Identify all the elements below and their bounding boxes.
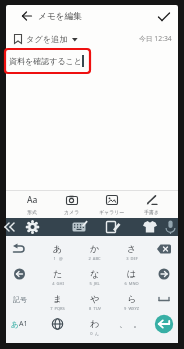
staticText: 今日 12:34 — [139, 34, 172, 43]
button[interactable] — [71, 218, 88, 236]
button[interactable]: 記号 — [4, 286, 35, 312]
button[interactable]: 、 — [113, 311, 150, 337]
button[interactable]: た — [39, 261, 76, 287]
staticText: 5 JKL — [89, 281, 100, 286]
staticText: 手書き — [144, 209, 160, 215]
button[interactable]: タグを追加 — [12, 31, 86, 46]
staticText: 0 ん — [90, 331, 99, 336]
staticText: Aa — [27, 194, 38, 206]
staticText: 9 WXYZ — [124, 306, 139, 311]
staticText: わ — [90, 318, 100, 329]
button[interactable]: ギャラリー — [94, 190, 130, 218]
staticText: ら — [127, 293, 137, 304]
button[interactable] — [24, 218, 41, 236]
staticText: 、 — [119, 319, 128, 330]
button[interactable] — [18, 7, 36, 25]
staticText: か — [90, 243, 100, 254]
staticText: さ — [127, 243, 137, 254]
staticText: カメラ — [64, 209, 80, 215]
button[interactable]: は — [113, 261, 150, 287]
button[interactable]: ま — [39, 286, 76, 312]
button[interactable] — [150, 286, 178, 312]
button[interactable] — [141, 218, 159, 236]
staticText: A1 — [19, 319, 28, 329]
button[interactable]: わ — [76, 311, 113, 337]
staticText: ギャラリー — [99, 209, 125, 215]
staticText: 2 ABC — [88, 256, 101, 261]
button[interactable] — [150, 236, 178, 262]
staticText: タグを追加 — [26, 34, 68, 44]
button[interactable]: あ — [39, 236, 76, 262]
staticText: 記号 — [13, 295, 27, 304]
button[interactable]: カメラ — [54, 190, 90, 218]
staticText: 形式 — [27, 209, 37, 215]
button[interactable] — [150, 311, 178, 337]
staticText: 8 TUV — [89, 306, 101, 311]
staticText: 資料を確認すること — [9, 56, 82, 66]
button[interactable]: か — [76, 236, 113, 262]
button[interactable] — [39, 311, 76, 337]
staticText: あ — [53, 243, 63, 254]
staticText: 1 @ — [53, 256, 63, 261]
button[interactable] — [163, 218, 178, 236]
staticText: 7 PQRS — [50, 306, 65, 311]
staticText: 6 MNO — [124, 281, 139, 286]
button[interactable]: さ — [113, 236, 150, 262]
button[interactable]: あ — [4, 311, 35, 337]
button[interactable] — [105, 218, 122, 236]
button[interactable] — [150, 261, 178, 287]
button[interactable]: Aa — [14, 190, 50, 218]
button[interactable]: な — [76, 261, 113, 287]
button[interactable] — [4, 261, 35, 287]
staticText: あ — [11, 320, 19, 329]
staticText: は — [127, 268, 137, 279]
button[interactable] — [4, 236, 35, 262]
staticText: た — [53, 268, 63, 279]
staticText: ま — [53, 293, 63, 304]
staticText: 4 GHI — [52, 281, 64, 286]
staticText: 3 DEF — [126, 256, 138, 261]
button[interactable] — [155, 8, 173, 25]
button[interactable]: 手書き — [134, 190, 170, 218]
staticText: 。 — [133, 319, 142, 330]
button[interactable]: や — [76, 286, 113, 312]
button[interactable] — [2, 218, 16, 236]
staticText: や — [90, 293, 100, 304]
staticText: な — [90, 268, 100, 279]
staticText: メモを編集 — [38, 11, 83, 22]
button[interactable]: ら — [113, 286, 150, 312]
